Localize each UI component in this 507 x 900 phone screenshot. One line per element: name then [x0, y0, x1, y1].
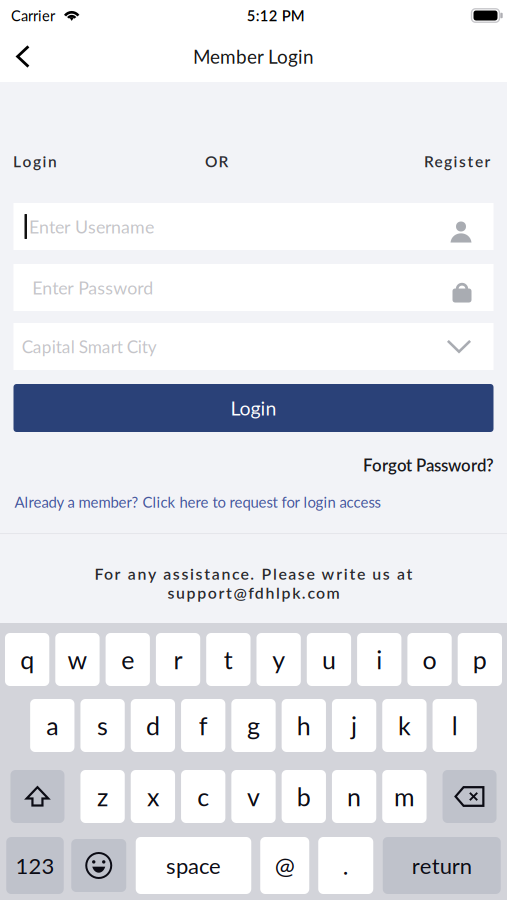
staticText: d — [146, 710, 160, 740]
button[interactable]: b — [282, 770, 326, 823]
staticText: w — [67, 644, 87, 674]
button[interactable]: 123 — [6, 837, 64, 894]
staticText: j — [351, 710, 357, 740]
button[interactable]: v — [231, 770, 276, 823]
staticText: OR — [205, 152, 228, 171]
staticText: support@fdhlpk.com — [167, 583, 340, 602]
button[interactable]: m — [382, 770, 426, 823]
staticText: . — [343, 851, 349, 880]
staticText: u — [322, 644, 336, 674]
staticText: i — [376, 644, 382, 674]
staticText: v — [247, 781, 260, 811]
button[interactable]: p — [458, 633, 502, 686]
staticText: o — [422, 644, 436, 674]
staticText: 5:12 PM — [247, 7, 305, 24]
staticText: return — [412, 852, 472, 879]
staticText: x — [147, 781, 159, 811]
staticText: z — [97, 781, 108, 811]
button[interactable]: o — [407, 633, 452, 686]
staticText: a — [46, 710, 58, 740]
button[interactable]: y — [256, 633, 301, 686]
staticText: Capital Smart City — [22, 336, 157, 357]
staticText: e — [121, 644, 134, 674]
staticText: b — [297, 781, 311, 811]
staticText: Forgot Password? — [363, 455, 494, 475]
staticText: Carrier — [11, 7, 55, 24]
button[interactable]: Register — [424, 152, 490, 171]
button[interactable]: e — [106, 633, 150, 686]
button[interactable]: x — [131, 770, 175, 823]
button[interactable]: a — [30, 699, 74, 752]
staticText: Register — [424, 152, 490, 171]
button[interactable]: . — [318, 837, 373, 894]
staticText: Login — [230, 396, 276, 420]
staticText: Enter Username — [29, 216, 154, 237]
button[interactable]: Capital Smart City — [13, 323, 493, 370]
staticText: Already a member? Click here to request … — [14, 493, 380, 511]
button[interactable]: i — [357, 633, 401, 686]
staticText: q — [20, 644, 34, 674]
button[interactable]: Forgot Password? — [363, 455, 494, 475]
staticText: space — [166, 852, 221, 879]
button[interactable]: Back — [0, 35, 46, 78]
staticText: t — [224, 644, 233, 674]
staticText: p — [473, 644, 487, 674]
button[interactable]: k — [382, 699, 426, 752]
staticText: c — [197, 781, 209, 811]
staticText: r — [173, 644, 182, 674]
button[interactable]: w — [55, 633, 100, 686]
button[interactable]: l — [433, 699, 477, 752]
button[interactable]: Already a member? Click here to request … — [14, 493, 380, 511]
staticText: k — [398, 710, 411, 740]
button[interactable]: Emoji — [71, 839, 126, 892]
button[interactable]: f — [181, 699, 225, 752]
button[interactable]: Login — [13, 384, 493, 432]
staticText: f — [199, 710, 208, 740]
button[interactable]: Shift — [10, 770, 64, 823]
staticText: For any assistance. Please write us at — [94, 564, 413, 583]
staticText: Member Login — [193, 45, 314, 68]
button[interactable]: g — [231, 699, 276, 752]
staticText: h — [297, 710, 311, 740]
button[interactable]: Enter Username — [13, 203, 493, 250]
button[interactable]: t — [206, 633, 250, 686]
staticText: l — [452, 710, 458, 740]
button[interactable]: r — [156, 633, 200, 686]
button[interactable]: z — [80, 770, 125, 823]
button[interactable]: Enter Password — [13, 264, 493, 311]
button[interactable]: Delete — [443, 770, 497, 823]
staticText: s — [97, 710, 108, 740]
button[interactable]: j — [332, 699, 376, 752]
button[interactable]: h — [282, 699, 326, 752]
staticText: Login — [13, 152, 57, 171]
staticText: @ — [275, 851, 295, 880]
staticText: Enter Password — [32, 277, 153, 298]
button[interactable]: s — [80, 699, 125, 752]
staticText: y — [272, 644, 285, 674]
button[interactable]: u — [307, 633, 351, 686]
button[interactable]: return — [383, 837, 501, 894]
button[interactable]: Login — [13, 152, 57, 171]
button[interactable]: space — [136, 837, 251, 894]
button[interactable]: @ — [260, 837, 309, 894]
button[interactable]: q — [5, 633, 49, 686]
staticText: m — [394, 781, 415, 811]
staticText: g — [247, 710, 260, 740]
button[interactable]: d — [131, 699, 175, 752]
button[interactable]: n — [332, 770, 376, 823]
staticText: 123 — [15, 852, 54, 879]
staticText: n — [347, 781, 361, 811]
button[interactable]: c — [181, 770, 225, 823]
